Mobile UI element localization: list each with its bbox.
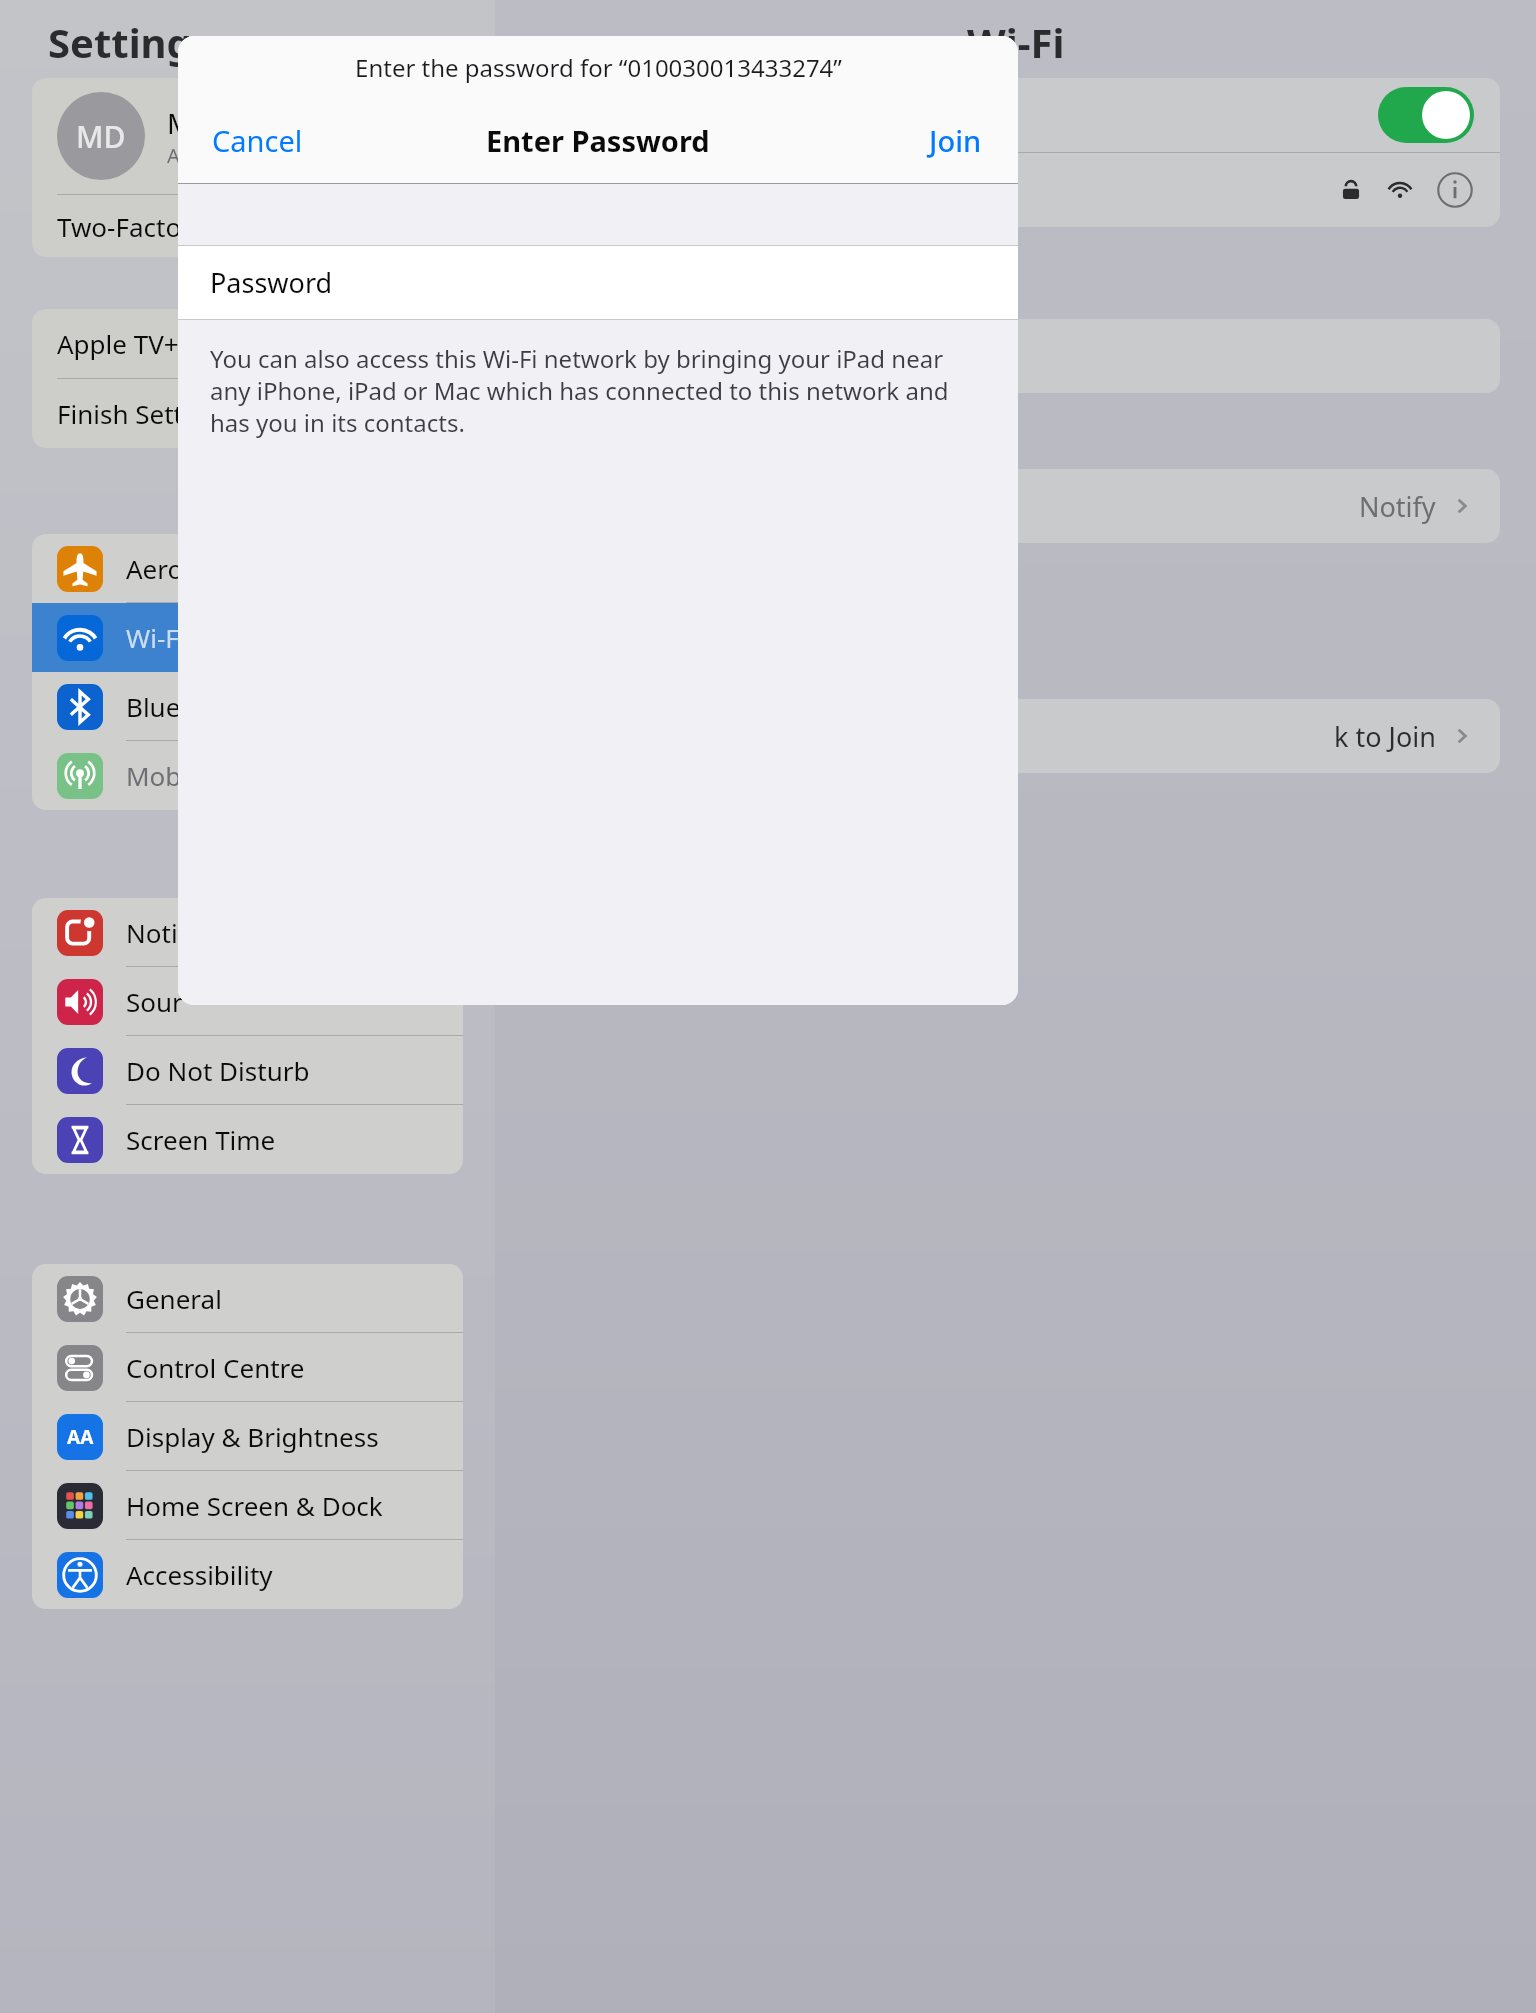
staticText: Home Screen & Dock <box>126 1488 383 1523</box>
staticText: Password <box>210 264 333 301</box>
button[interactable]: Accessibility <box>32 1540 463 1609</box>
button[interactable]: Wi-Fi on <box>557 78 1474 152</box>
staticText: Screen Time <box>126 1122 276 1157</box>
button[interactable]: k to Join <box>557 699 1474 773</box>
button[interactable]: Blue <box>32 672 463 741</box>
staticText: Two-Facto <box>57 209 182 244</box>
button[interactable]: MD <box>57 78 463 194</box>
staticText: Enter the password for “010030013433274” <box>355 51 842 84</box>
staticText: Display & Brightness <box>126 1419 379 1454</box>
button[interactable]: Notify <box>557 469 1474 543</box>
button[interactable]: Screen Time <box>32 1105 463 1174</box>
staticText: Apple TV+ <box>57 326 179 361</box>
button[interactable]: Password <box>178 246 1018 319</box>
button[interactable]: Cancel <box>206 113 309 168</box>
staticText: A <box>167 142 180 169</box>
staticText: Settings <box>48 15 212 69</box>
staticText: Cancel <box>212 121 303 160</box>
staticText: Notify <box>1359 488 1436 525</box>
button[interactable]: Apple TV+ <box>57 309 463 378</box>
button[interactable]: AA <box>32 1402 463 1471</box>
staticText: Join <box>929 121 982 160</box>
staticText: Sour <box>126 984 183 1019</box>
button[interactable]: General <box>32 1264 463 1333</box>
button[interactable]: Two-Facto <box>57 195 463 257</box>
staticText: General <box>126 1281 222 1316</box>
button[interactable]: Home Screen & Dock <box>32 1471 463 1540</box>
button[interactable]: Network info <box>557 153 1474 227</box>
button[interactable]: Do Not Disturb <box>32 1036 463 1105</box>
button[interactable]: Notif <box>32 898 463 967</box>
staticText: Wi-Fi <box>967 15 1065 69</box>
staticText: Mob <box>126 758 182 793</box>
staticText: You can also access this Wi-Fi network b… <box>210 342 988 439</box>
staticText: Notif <box>126 915 187 950</box>
button[interactable]: Network info <box>1436 171 1474 209</box>
staticText: Blue <box>126 689 181 724</box>
staticText: Wi-F <box>126 620 179 655</box>
button[interactable]: Finish Sett <box>57 379 463 448</box>
staticText: k to Join <box>1334 718 1436 755</box>
staticText: Do Not Disturb <box>126 1053 310 1088</box>
staticText: Enter Password <box>486 121 710 160</box>
button[interactable]: Aero <box>32 534 463 603</box>
button[interactable]: Join <box>923 113 988 168</box>
staticText: MD <box>76 116 126 157</box>
button[interactable]: Sour <box>32 967 463 1036</box>
button[interactable]: Wi-F <box>32 603 463 672</box>
staticText: AA <box>67 1424 94 1450</box>
button[interactable]: Control Centre <box>32 1333 463 1402</box>
staticText: Control Centre <box>126 1350 305 1385</box>
staticText: Aero <box>126 551 184 586</box>
button[interactable]: Mob <box>32 741 463 810</box>
staticText: Finish Sett <box>57 396 183 431</box>
button[interactable]: Wi-Fi on <box>1378 87 1474 143</box>
staticText: M <box>167 104 193 142</box>
staticText: Accessibility <box>126 1557 273 1592</box>
